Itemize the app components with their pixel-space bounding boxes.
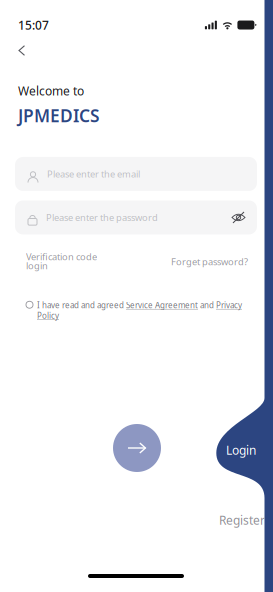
button[interactable]: Back: [0, 31, 40, 64]
staticText: I have read and agreed Service Agreement…: [37, 300, 242, 321]
button[interactable]: Register: [207, 511, 273, 529]
staticText: Welcome to: [18, 83, 84, 99]
staticText: Forget password?: [171, 255, 248, 268]
button[interactable]: Verification code: [26, 250, 97, 272]
staticText: Login: [226, 442, 256, 458]
button[interactable]: Show password: [232, 211, 245, 224]
staticText: Register: [219, 512, 265, 528]
button[interactable]: Next: [113, 424, 161, 472]
staticText: JPMEDICS: [18, 104, 100, 127]
staticText: 15:07: [18, 17, 49, 33]
button[interactable]: Login: [211, 440, 271, 460]
button[interactable]: Agree to terms: [26, 300, 33, 308]
staticText: Please enter the password: [46, 211, 158, 224]
staticText: login: [26, 259, 48, 272]
button[interactable]: Forget password?: [171, 255, 248, 268]
staticText: Please enter the email: [47, 168, 140, 180]
staticText: Verification code: [26, 250, 97, 263]
